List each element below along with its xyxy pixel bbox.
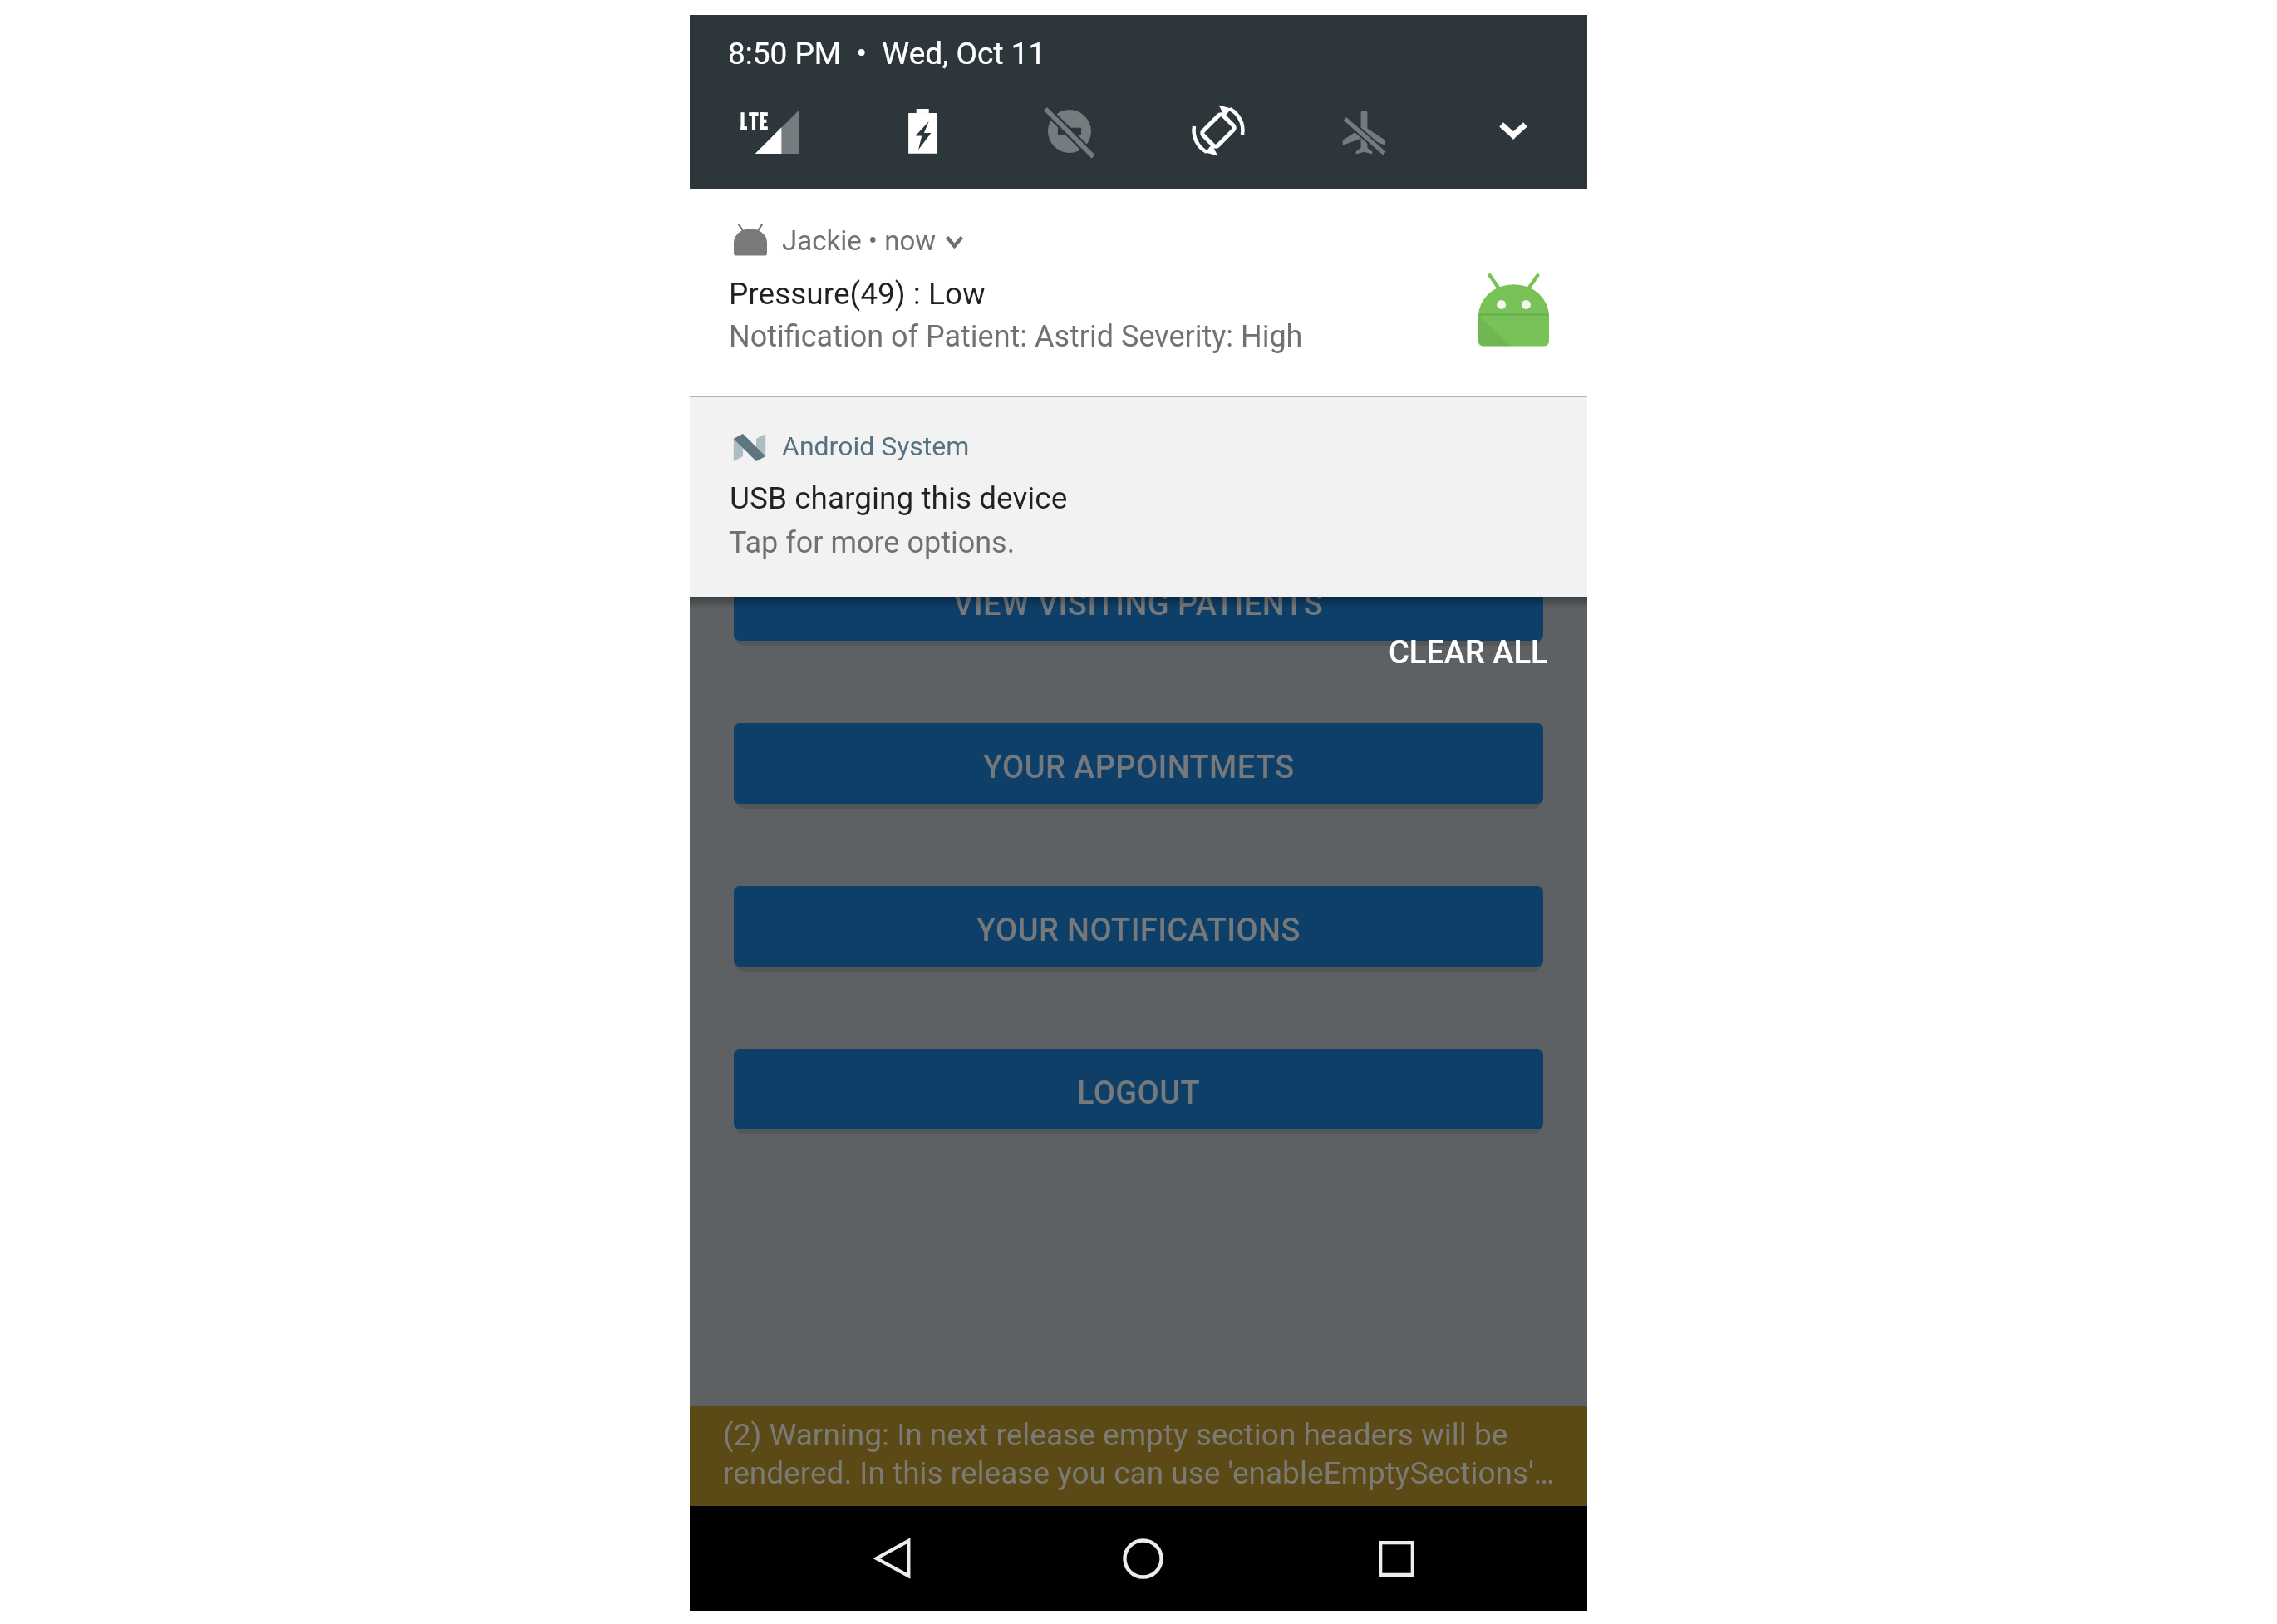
staticText: 8:50 PM • Wed, Oct 11 <box>728 36 1046 71</box>
button[interactable]: CLEAR ALL <box>1307 624 1548 681</box>
staticText: Tap for more options. <box>729 525 1016 560</box>
button[interactable]: LOGOUT <box>734 1049 1543 1129</box>
staticText: VIEW VISITING PATIENTS <box>953 586 1324 623</box>
staticText: Android System <box>782 431 970 462</box>
staticText: Jackie • now <box>782 224 937 257</box>
staticText: USB charging this device <box>730 480 1068 516</box>
button[interactable]: YOUR APPOINTMETS <box>734 723 1543 804</box>
button[interactable]: YOUR NOTIFICATIONS <box>734 886 1543 967</box>
staticText: YOUR NOTIFICATIONS <box>976 912 1301 949</box>
button[interactable]: Recent apps <box>1344 1506 1448 1611</box>
button[interactable]: Expand quick settings <box>1476 93 1551 168</box>
button[interactable]: Android System <box>690 396 1587 597</box>
button[interactable]: Jackie • now <box>690 189 1587 396</box>
staticText: CLEAR ALL <box>1389 634 1548 672</box>
staticText: Pressure(49) : Low <box>729 276 986 312</box>
staticText: YOUR APPOINTMETS <box>983 749 1295 786</box>
staticText: (2) Warning: In next release empty secti… <box>723 1417 1555 1491</box>
button[interactable]: Back <box>840 1506 945 1611</box>
staticText: LOGOUT <box>1077 1075 1200 1112</box>
staticText: Notification of Patient: Astrid Severity… <box>729 319 1303 354</box>
button[interactable]: Home <box>1090 1506 1195 1611</box>
button[interactable]: VIEW VISITING PATIENTS <box>734 560 1543 641</box>
